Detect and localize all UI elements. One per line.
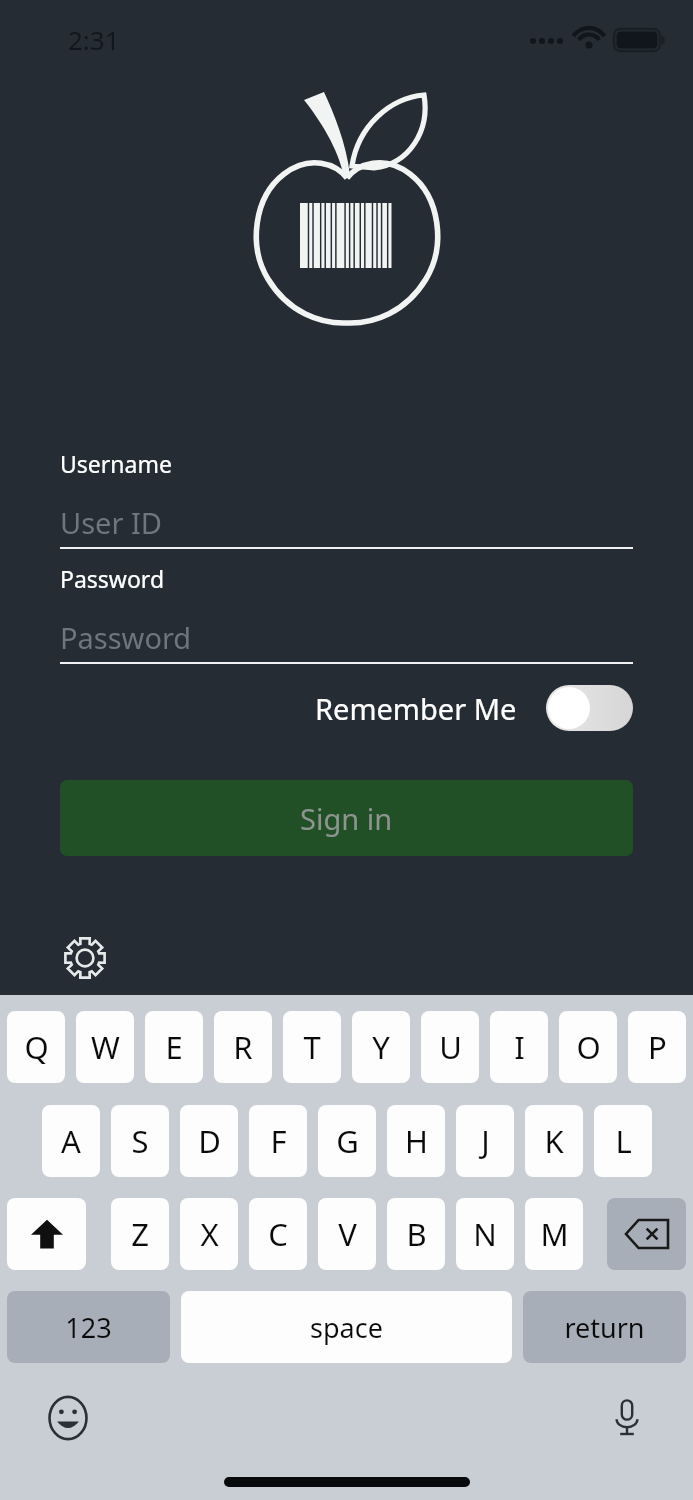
staticText: B xyxy=(406,1213,427,1255)
button[interactable]: C xyxy=(249,1198,307,1270)
staticText: M xyxy=(540,1213,569,1255)
staticText: Y xyxy=(372,1026,390,1068)
button[interactable]: return xyxy=(523,1291,686,1363)
button[interactable]: U xyxy=(421,1011,479,1083)
staticText: Remember Me xyxy=(315,689,517,728)
button[interactable]: A xyxy=(42,1105,100,1177)
staticText: K xyxy=(544,1120,564,1162)
staticText: L xyxy=(615,1120,632,1162)
button[interactable]: Dictate xyxy=(597,1388,657,1448)
button[interactable]: H xyxy=(387,1105,445,1177)
staticText: O xyxy=(576,1026,601,1068)
button[interactable]: User ID xyxy=(60,497,633,547)
button[interactable]: E xyxy=(145,1011,203,1083)
button[interactable]: Backspace xyxy=(607,1198,686,1270)
staticText: P xyxy=(648,1026,667,1068)
button[interactable]: L xyxy=(594,1105,652,1177)
button[interactable]: Remember Me xyxy=(60,683,633,733)
staticText: V xyxy=(338,1213,357,1255)
button[interactable]: W xyxy=(76,1011,134,1083)
staticText: Password xyxy=(60,618,192,657)
staticText: W xyxy=(91,1026,120,1068)
button[interactable]: B xyxy=(387,1198,445,1270)
staticText: 123 xyxy=(65,1309,112,1346)
staticText: J xyxy=(481,1120,490,1162)
staticText: E xyxy=(165,1026,183,1068)
button[interactable]: G xyxy=(318,1105,376,1177)
button[interactable]: R xyxy=(214,1011,272,1083)
staticText: A xyxy=(61,1120,81,1162)
staticText: 2:31 xyxy=(68,22,120,57)
button[interactable]: N xyxy=(456,1198,514,1270)
button[interactable]: J xyxy=(456,1105,514,1177)
button[interactable]: Z xyxy=(111,1198,169,1270)
staticText: Sign in xyxy=(300,799,393,838)
button[interactable]: V xyxy=(318,1198,376,1270)
button[interactable]: X xyxy=(180,1198,238,1270)
button[interactable]: Q xyxy=(7,1011,65,1083)
staticText: return xyxy=(564,1309,645,1346)
staticText: U xyxy=(439,1026,462,1068)
button[interactable]: P xyxy=(628,1011,686,1083)
button[interactable]: Y xyxy=(352,1011,410,1083)
staticText: R xyxy=(233,1026,253,1068)
staticText: H xyxy=(405,1120,428,1162)
button[interactable]: F xyxy=(249,1105,307,1177)
button[interactable]: M xyxy=(525,1198,583,1270)
staticText: User ID xyxy=(60,503,162,542)
staticText: Z xyxy=(131,1213,149,1255)
staticText: C xyxy=(268,1213,288,1255)
staticText: Q xyxy=(24,1026,49,1068)
button[interactable]: O xyxy=(559,1011,617,1083)
button[interactable]: Sign in xyxy=(60,780,633,856)
button[interactable]: Shift xyxy=(7,1198,86,1270)
button[interactable]: D xyxy=(180,1105,238,1177)
button[interactable]: 123 xyxy=(7,1291,170,1363)
staticText: S xyxy=(131,1120,149,1162)
button[interactable]: Password xyxy=(60,612,633,662)
staticText: X xyxy=(200,1213,219,1255)
staticText: T xyxy=(303,1026,321,1068)
button[interactable]: Emoji xyxy=(38,1388,98,1448)
staticText: I xyxy=(514,1026,525,1068)
button[interactable]: I xyxy=(490,1011,548,1083)
staticText: Password xyxy=(60,563,165,594)
staticText: F xyxy=(270,1120,287,1162)
button[interactable]: S xyxy=(111,1105,169,1177)
staticText: Username xyxy=(60,448,172,479)
staticText: D xyxy=(198,1120,221,1162)
button[interactable]: Settings xyxy=(55,928,115,988)
button[interactable]: K xyxy=(525,1105,583,1177)
button[interactable]: space xyxy=(181,1291,512,1363)
staticText: N xyxy=(473,1213,497,1255)
button[interactable]: T xyxy=(283,1011,341,1083)
staticText: G xyxy=(336,1120,359,1162)
staticText: space xyxy=(310,1309,383,1346)
